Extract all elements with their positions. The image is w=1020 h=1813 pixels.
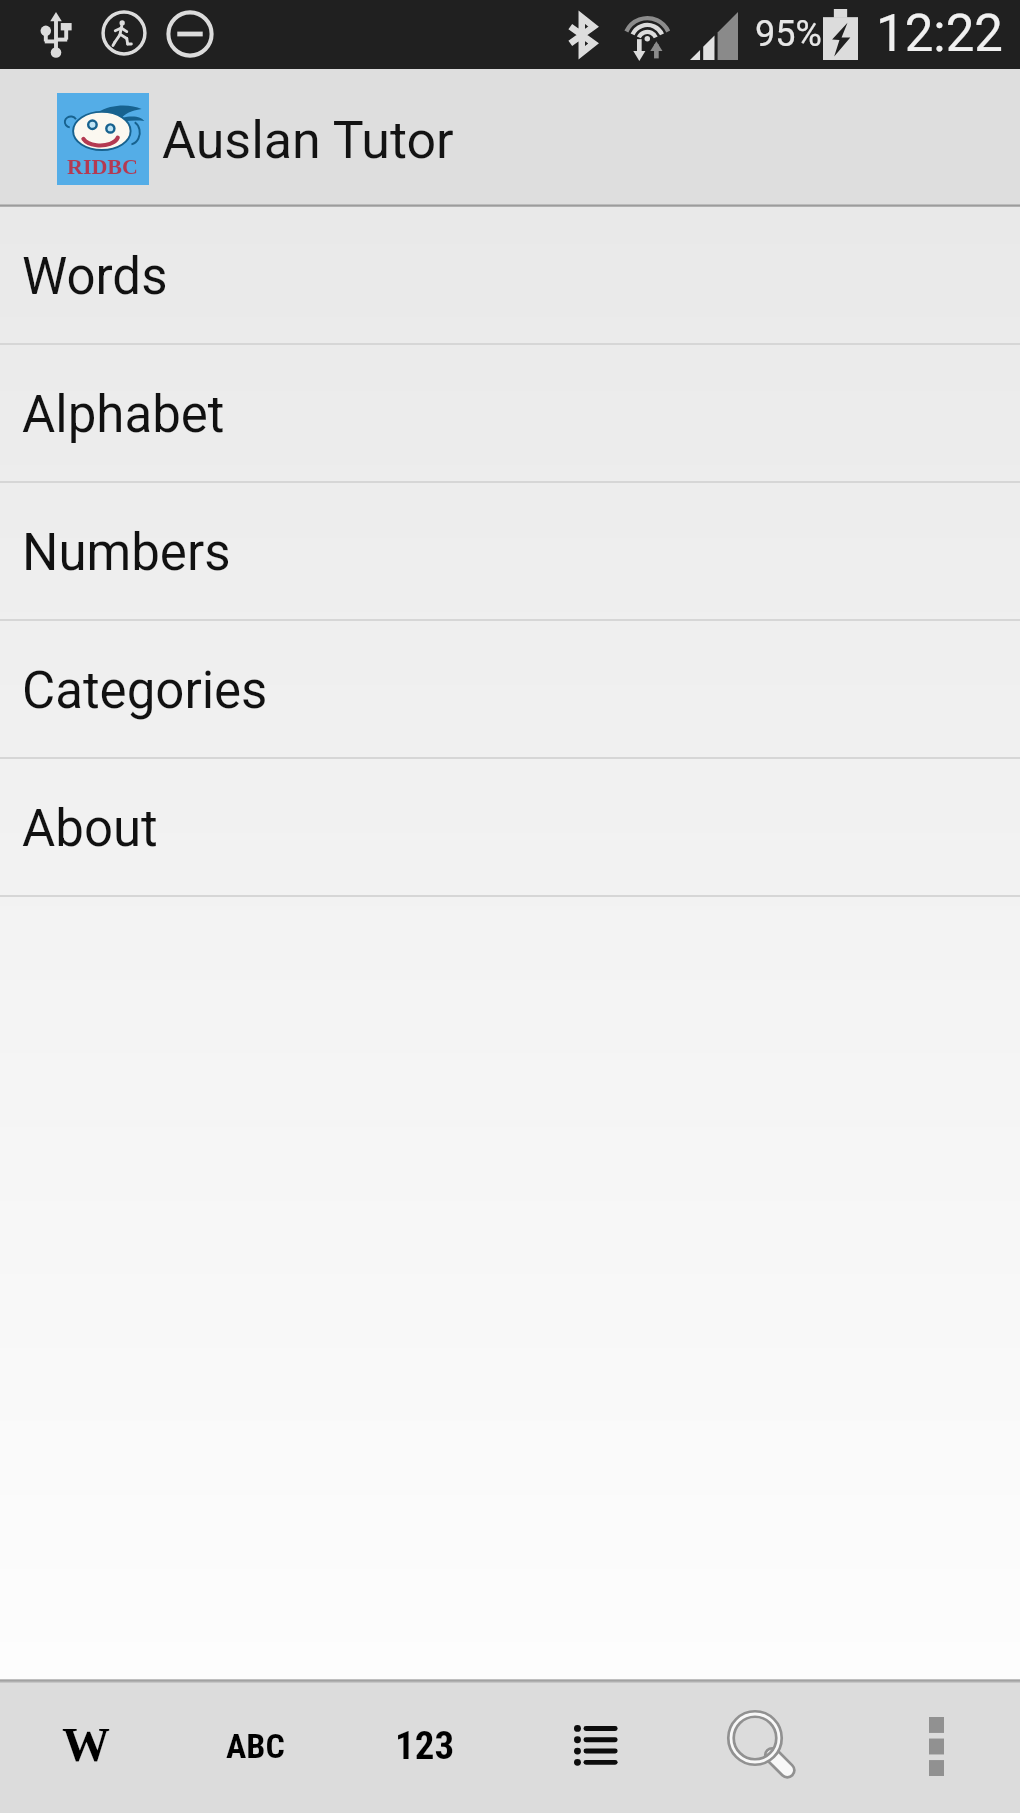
staticText: Words — [22, 247, 168, 307]
staticText: 123 — [395, 1723, 455, 1769]
button[interactable]: Words — [0, 207, 1020, 345]
staticText: Categories — [22, 661, 268, 721]
button[interactable]: Alphabet — [170, 1683, 340, 1813]
staticText: Numbers — [22, 523, 231, 583]
staticText: Auslan Tutor — [162, 110, 454, 171]
button[interactable]: RIDBC — [0, 69, 457, 204]
staticText: W — [62, 1718, 110, 1771]
button[interactable]: Categories — [0, 621, 1020, 759]
staticText: ABC — [226, 1726, 285, 1766]
button[interactable]: Alphabet — [0, 345, 1020, 483]
staticText: About — [22, 799, 158, 859]
button[interactable]: Numbers — [340, 1683, 510, 1813]
staticText: Alphabet — [22, 385, 225, 445]
button[interactable]: Numbers — [0, 483, 1020, 621]
button[interactable]: Search — [680, 1683, 850, 1813]
button[interactable]: About — [0, 759, 1020, 897]
button[interactable]: Categories — [510, 1683, 680, 1813]
staticText: RIDBC — [67, 154, 138, 178]
staticText: 12:22 — [876, 4, 1004, 64]
staticText: 95% — [755, 13, 822, 55]
button[interactable]: More options — [850, 1683, 1020, 1813]
button[interactable]: Words — [0, 1683, 170, 1813]
